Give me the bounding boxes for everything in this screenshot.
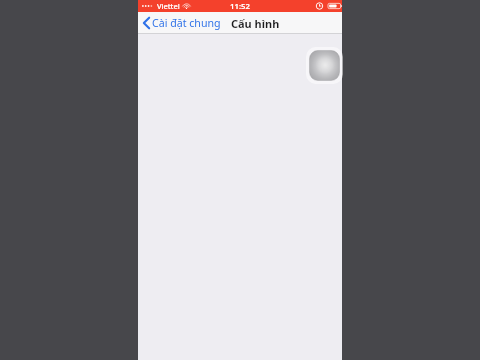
staticText: Cài đặt chung — [152, 16, 221, 30]
staticText: Viettel — [157, 1, 180, 11]
button[interactable]: App icon — [308, 49, 341, 82]
button[interactable]: Cài đặt chung — [138, 12, 220, 34]
staticText: 11:52 — [230, 1, 250, 12]
staticText: Cấu hình — [231, 16, 280, 31]
